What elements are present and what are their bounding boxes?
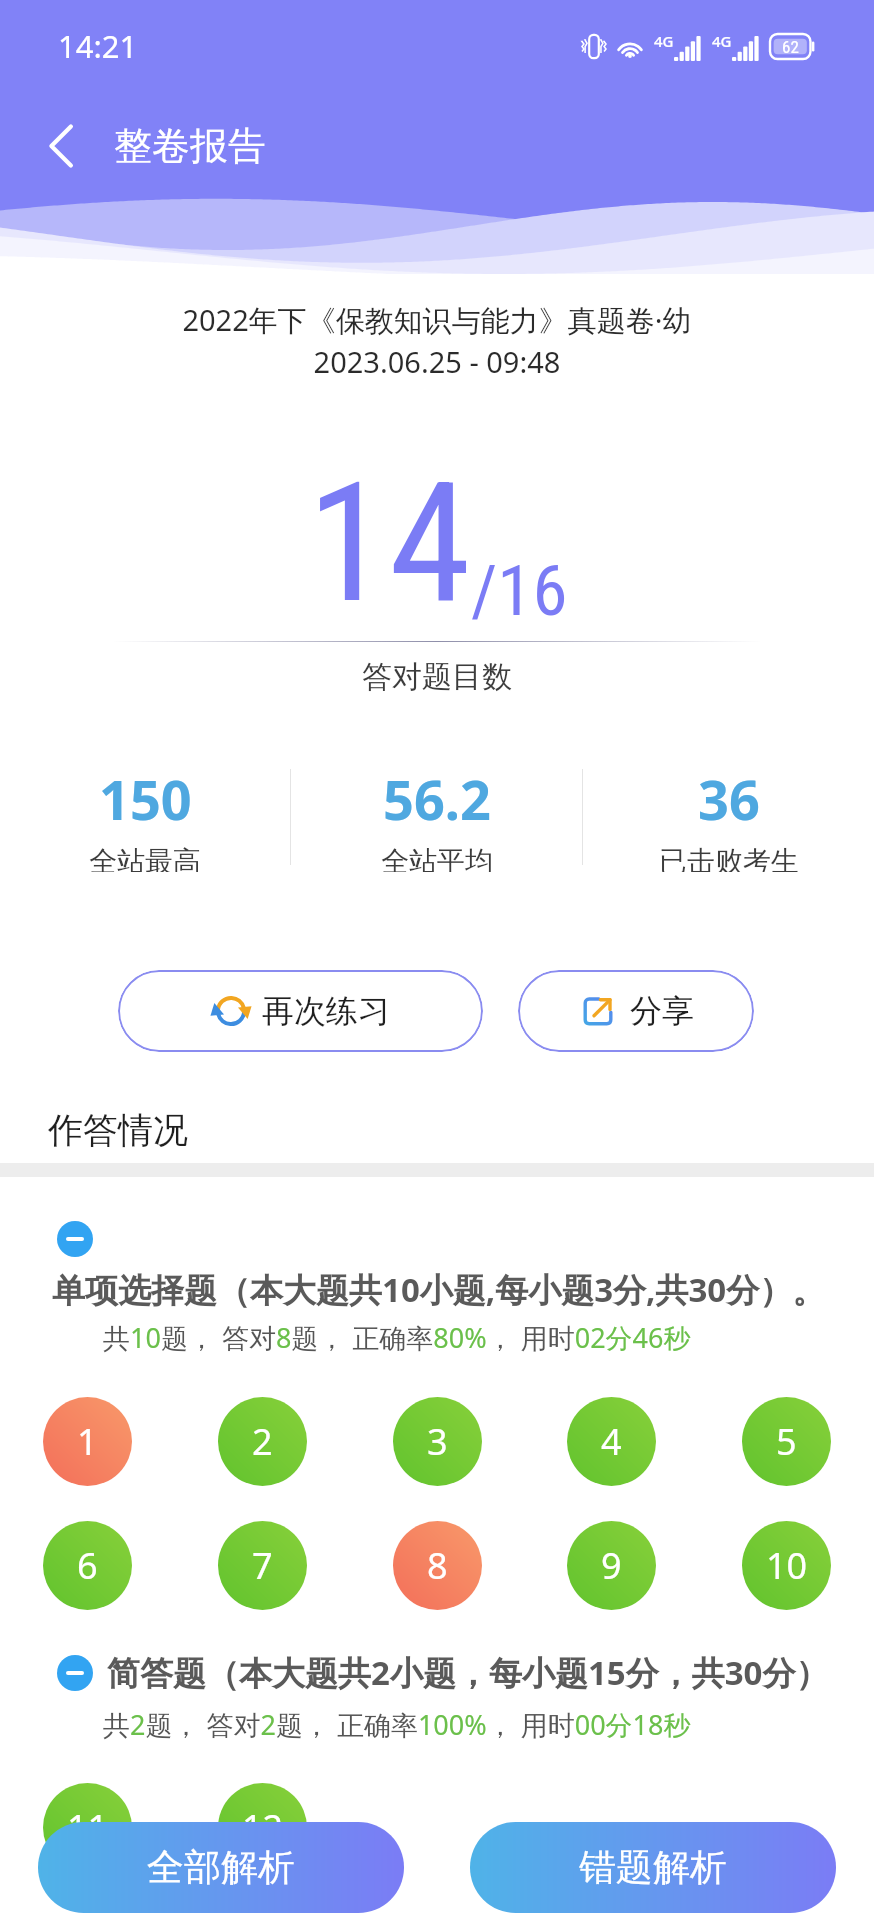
- staticText: 150: [99, 762, 192, 836]
- button[interactable]: 4: [567, 1397, 656, 1486]
- button[interactable]: 6: [43, 1521, 132, 1610]
- staticText: 4G: [712, 31, 732, 51]
- staticText: 共2题， 答对2题， 正确率100%， 用时00分18秒: [103, 1706, 691, 1743]
- staticText: 8: [427, 1541, 448, 1590]
- button[interactable]: 8: [393, 1521, 482, 1610]
- staticText: 36: [698, 762, 760, 836]
- staticText: 9: [601, 1541, 622, 1590]
- button[interactable]: 7: [218, 1521, 307, 1610]
- button[interactable]: 3: [393, 1397, 482, 1486]
- staticText: 再次练习: [262, 991, 390, 1031]
- staticText: 全站平均: [381, 844, 493, 872]
- staticText: 单项选择题（本大题共10小题,每小题3分,共30分）。: [52, 1267, 826, 1312]
- button[interactable]: Back: [28, 113, 94, 179]
- button[interactable]: Collapse section: [57, 1221, 93, 1257]
- staticText: 4G: [654, 31, 674, 51]
- staticText: 2: [252, 1417, 273, 1466]
- staticText: 12: [242, 1803, 284, 1852]
- staticText: 错题解析: [579, 1844, 727, 1891]
- button[interactable]: 全部解析: [38, 1822, 404, 1913]
- staticText: 共10题， 答对8题， 正确率80%， 用时02分46秒: [103, 1319, 691, 1356]
- button[interactable]: 12: [218, 1783, 307, 1872]
- staticText: 56.2: [383, 762, 491, 836]
- button[interactable]: Collapse section: [57, 1655, 93, 1691]
- staticText: 7: [252, 1541, 273, 1590]
- staticText: 11: [67, 1803, 109, 1852]
- button[interactable]: 分享: [518, 970, 754, 1052]
- staticText: 分享: [630, 991, 694, 1031]
- staticText: 全部解析: [147, 1844, 295, 1891]
- staticText: 14: [307, 446, 471, 641]
- staticText: 1: [77, 1417, 98, 1466]
- staticText: 答对题目数: [0, 658, 874, 696]
- staticText: 4: [601, 1417, 622, 1466]
- button[interactable]: 11: [43, 1783, 132, 1872]
- staticText: 6: [77, 1541, 98, 1590]
- button[interactable]: 再次练习: [118, 970, 483, 1052]
- staticText: /16: [471, 549, 568, 632]
- staticText: 2023.06.25 - 09:48: [0, 342, 874, 381]
- staticText: 5: [776, 1417, 797, 1466]
- staticText: 已击败考生: [659, 844, 799, 872]
- staticText: 62: [782, 37, 799, 57]
- button[interactable]: 5: [742, 1397, 831, 1486]
- staticText: 10: [766, 1541, 808, 1590]
- button[interactable]: 错题解析: [470, 1822, 836, 1913]
- button[interactable]: 9: [567, 1521, 656, 1610]
- button[interactable]: 1: [43, 1397, 132, 1486]
- staticText: 14:21: [58, 25, 138, 67]
- staticText: 3: [427, 1417, 448, 1466]
- staticText: 2022年下《保教知识与能力》真题卷·幼: [0, 300, 874, 340]
- button[interactable]: 10: [742, 1521, 831, 1610]
- staticText: 作答情况: [48, 1108, 188, 1152]
- button[interactable]: 2: [218, 1397, 307, 1486]
- staticText: 整卷报告: [114, 122, 266, 170]
- staticText: 全站最高: [89, 844, 201, 872]
- staticText: 简答题（本大题共2小题，每小题15分，共30分）: [107, 1650, 829, 1695]
